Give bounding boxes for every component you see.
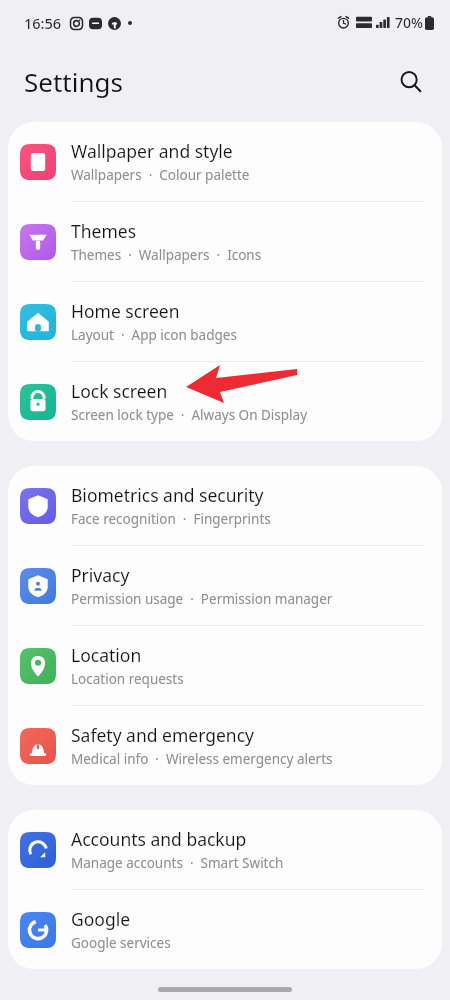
staticText: Permission usage · Permission manager (71, 590, 333, 608)
staticText: Medical info · Wireless emergency alerts (71, 750, 333, 768)
staticText: Settings (24, 64, 123, 99)
button[interactable]: Privacy (8, 546, 442, 625)
button[interactable]: Accounts and backup (8, 810, 442, 889)
staticText: Wallpaper and style (71, 139, 233, 163)
button[interactable]: Google (8, 890, 442, 969)
staticText: Safety and emergency (71, 723, 254, 747)
staticText: Themes (71, 219, 137, 243)
staticText: Lock screen (71, 379, 168, 403)
button[interactable]: Safety and emergency (8, 706, 442, 785)
staticText: Home screen (71, 299, 180, 323)
button[interactable]: Themes (8, 202, 442, 281)
staticText: Location (71, 643, 142, 667)
staticText: Themes · Wallpapers · Icons (71, 246, 262, 264)
staticText: 16:56 (24, 13, 62, 33)
button[interactable]: Home screen (8, 282, 442, 361)
staticText: 70% (395, 13, 423, 32)
button[interactable]: Search settings (388, 59, 432, 103)
staticText: Biometrics and security (71, 483, 264, 507)
staticText: Google services (71, 934, 171, 952)
staticText: Layout · App icon badges (71, 326, 237, 344)
button[interactable]: Lock screen (8, 362, 442, 441)
staticText: Location requests (71, 670, 184, 688)
button[interactable]: Biometrics and security (8, 466, 442, 545)
staticText: Face recognition · Fingerprints (71, 510, 271, 528)
button[interactable]: Location (8, 626, 442, 705)
staticText: Privacy (71, 563, 130, 587)
staticText: Google (71, 907, 131, 931)
staticText: Screen lock type · Always On Display (71, 406, 308, 424)
staticText: Wallpapers · Colour palette (71, 166, 250, 184)
button[interactable]: Wallpaper and style (8, 122, 442, 201)
staticText: Accounts and backup (71, 827, 247, 851)
staticText: Manage accounts · Smart Switch (71, 854, 284, 872)
